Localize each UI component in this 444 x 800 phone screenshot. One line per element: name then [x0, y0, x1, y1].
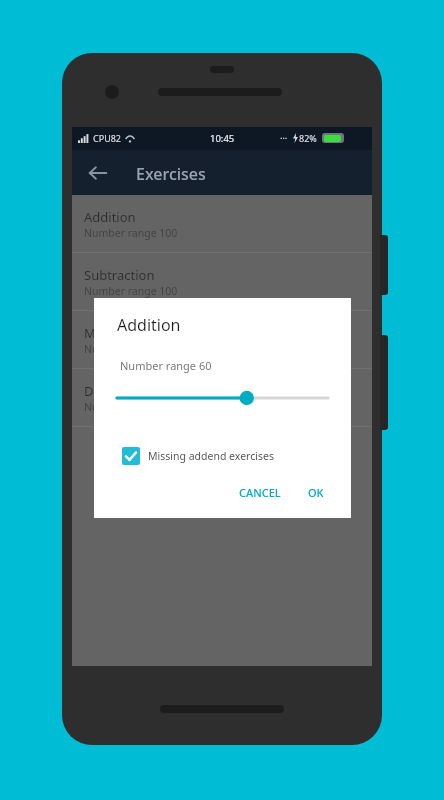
button[interactable]: Division: [72, 369, 372, 427]
staticText: Number range 100: [84, 284, 178, 298]
staticText: OK: [308, 485, 324, 500]
staticText: CANCEL: [239, 485, 281, 500]
staticText: Division: [84, 382, 133, 400]
staticText: ...: [280, 129, 288, 141]
staticText: Number range 60: [120, 358, 212, 373]
button[interactable]: Back: [85, 160, 111, 186]
staticText: Subtraction: [84, 266, 155, 284]
staticText: 82%: [299, 132, 317, 144]
button[interactable]: CANCEL: [231, 478, 289, 506]
staticText: Exercises: [136, 163, 206, 185]
staticText: Number range 100: [84, 342, 178, 356]
staticText: Number range 100: [84, 226, 178, 240]
staticText: Multiplication: [84, 324, 168, 342]
staticText: CPU82: [93, 132, 122, 144]
staticText: 10:45: [210, 132, 235, 145]
button[interactable]: [112, 386, 333, 410]
button[interactable]: Missing addend exercises: [116, 443, 276, 469]
button[interactable]: Subtraction: [72, 253, 372, 311]
staticText: Addition: [117, 314, 181, 336]
staticText: Number range 100: [84, 400, 178, 414]
staticText: Addition: [84, 208, 136, 226]
button[interactable]: Multiplication: [72, 311, 372, 369]
button[interactable]: Addition: [72, 195, 372, 253]
staticText: Missing addend exercises: [148, 449, 274, 463]
button[interactable]: OK: [300, 478, 332, 506]
